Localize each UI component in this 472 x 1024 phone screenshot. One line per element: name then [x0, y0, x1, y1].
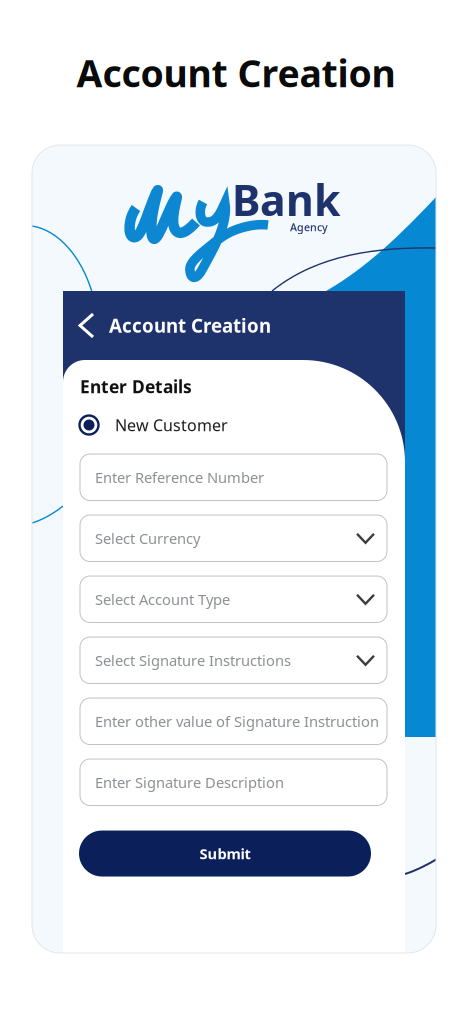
staticText: Select Account Type	[95, 589, 230, 609]
staticText: Select Signature Instructions	[95, 650, 291, 670]
staticText: Enter other value of Signature Instructi…	[95, 711, 379, 731]
button[interactable]: New Customer	[63, 410, 405, 440]
staticText: Agency	[290, 220, 328, 234]
staticText: Enter Signature Description	[95, 772, 284, 792]
button[interactable]: Enter Reference Number	[80, 454, 387, 500]
staticText: Enter Details	[80, 375, 192, 398]
button[interactable]: Enter Signature Description	[80, 759, 387, 805]
staticText: New Customer	[115, 414, 228, 436]
button[interactable]: Select Currency	[80, 515, 387, 561]
button[interactable]: Select Account Type	[80, 576, 387, 622]
staticText: Account Creation	[109, 313, 271, 338]
staticText: Bank	[232, 171, 340, 228]
button[interactable]: Enter other value of Signature Instructi…	[80, 698, 387, 744]
staticText: Enter Reference Number	[95, 467, 264, 487]
button[interactable]: Submit	[79, 830, 371, 876]
staticText: Account Creation	[76, 48, 395, 98]
staticText: Submit	[199, 844, 250, 863]
button[interactable]: Back	[63, 291, 405, 360]
button[interactable]: Select Signature Instructions	[80, 637, 387, 683]
staticText: Select Currency	[95, 528, 200, 548]
